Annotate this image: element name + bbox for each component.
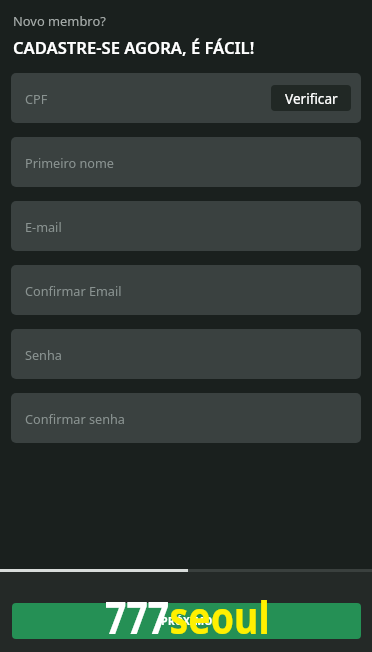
staticText: E-mail	[25, 218, 62, 235]
staticText: PRÓXIMO	[161, 614, 213, 628]
staticText: Novo membro?	[13, 12, 106, 30]
button[interactable]: E-mail	[11, 201, 361, 251]
staticText: 777	[105, 587, 170, 647]
button[interactable]: Confirmar senha	[11, 393, 361, 443]
button[interactable]: Senha	[11, 329, 361, 379]
button[interactable]: PRÓXIMO	[12, 603, 361, 639]
staticText: Confirmar Email	[25, 282, 122, 299]
staticText: CPF	[25, 90, 48, 107]
staticText: Senha	[25, 346, 62, 363]
other: 777seoul	[105, 587, 270, 647]
button[interactable]: Verificar	[271, 85, 351, 111]
staticText: Verificar	[285, 89, 338, 108]
button[interactable]: Confirmar Email	[11, 265, 361, 315]
staticText: CADASTRE-SE AGORA, É FÁCIL!	[13, 36, 255, 59]
staticText: Primeiro nome	[25, 154, 114, 171]
staticText: seoul	[170, 587, 270, 647]
staticText: Confirmar senha	[25, 410, 125, 427]
button[interactable]: CPF	[11, 73, 361, 123]
button[interactable]: Primeiro nome	[11, 137, 361, 187]
